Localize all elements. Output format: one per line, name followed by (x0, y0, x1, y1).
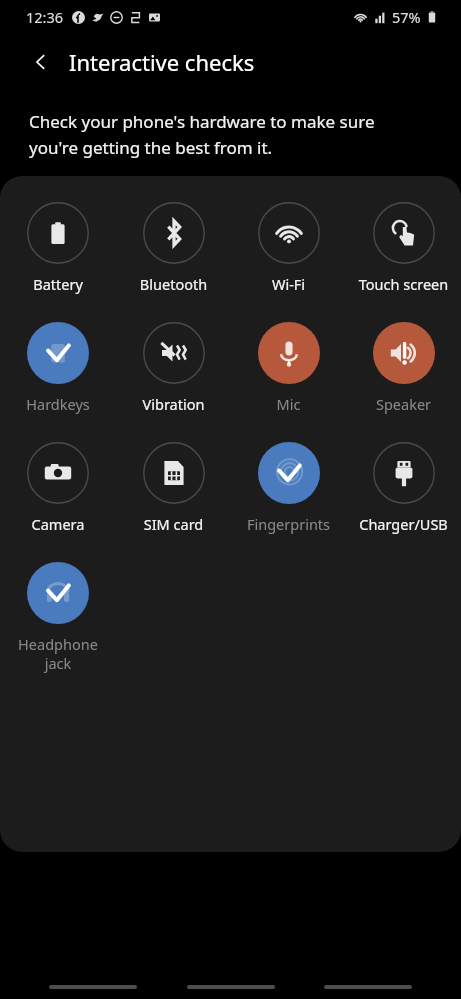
button[interactable]: Back (24, 45, 58, 79)
staticText: Vibration (116, 394, 231, 414)
staticText: Check your phone's hardware to make sure… (29, 110, 427, 159)
button[interactable]: Charger/USB (346, 440, 461, 536)
button[interactable]: Navigation (187, 985, 275, 989)
button[interactable]: Speaker (346, 320, 461, 416)
staticText: Speaker (346, 394, 461, 414)
staticText: Touch screen (346, 274, 461, 294)
staticText: Hardkeys (0, 394, 116, 414)
button[interactable]: Navigation (49, 985, 137, 989)
button[interactable]: Camera (0, 440, 116, 536)
staticText: Headphone jack (0, 634, 116, 673)
button[interactable]: Vibration (116, 320, 231, 416)
button[interactable]: Battery (0, 200, 116, 296)
staticText: 57% (392, 7, 421, 27)
button[interactable]: Fingerprints (231, 440, 346, 536)
staticText: Charger/USB (346, 514, 461, 534)
staticText: Battery (0, 274, 116, 294)
staticText: Mic (231, 394, 346, 414)
button[interactable]: Headphone jack (0, 560, 116, 675)
button[interactable]: SIM card (116, 440, 231, 536)
button[interactable]: Bluetooth (116, 200, 231, 296)
staticText: Bluetooth (116, 274, 231, 294)
button[interactable]: Navigation (324, 985, 412, 989)
staticText: Camera (0, 514, 116, 534)
button[interactable]: Mic (231, 320, 346, 416)
staticText: SIM card (116, 514, 231, 534)
button[interactable]: Touch screen (346, 200, 461, 296)
staticText: Wi-Fi (231, 274, 346, 294)
staticText: Interactive checks (69, 47, 255, 77)
button[interactable]: Wi-Fi (231, 200, 346, 296)
staticText: 12:36 (26, 7, 64, 27)
staticText: Fingerprints (231, 514, 346, 534)
button[interactable]: Hardkeys (0, 320, 116, 416)
